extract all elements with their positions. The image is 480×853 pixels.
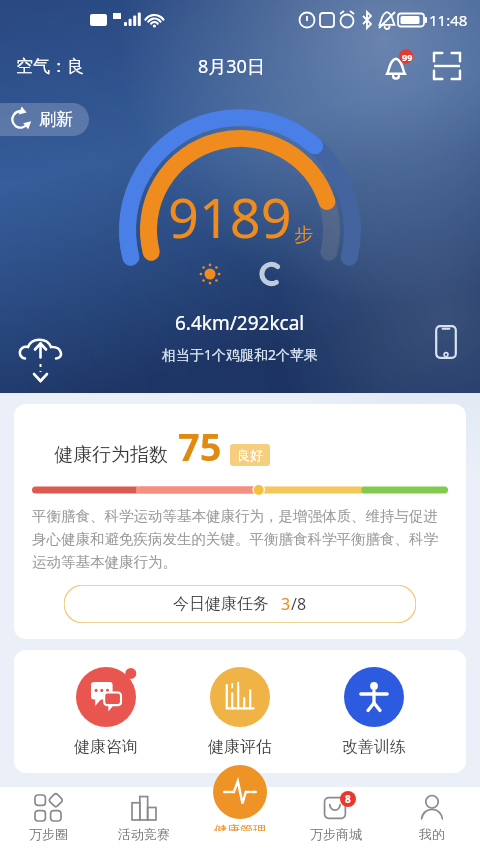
button[interactable]: 改善训练 — [332, 666, 416, 757]
button[interactable]: 空气：良 — [14, 52, 86, 81]
button[interactable]: 活动竞赛 — [96, 793, 192, 853]
button[interactable]: Sync — [16, 335, 66, 385]
button[interactable]: 健康咨询 — [64, 666, 148, 757]
button[interactable]: 今日健康任务 — [64, 585, 416, 623]
button[interactable]: Scan — [428, 47, 466, 85]
button[interactable]: 8 — [288, 793, 384, 853]
staticText: 75 — [178, 420, 222, 472]
staticText: 相当于1个鸡腿和2个苹果 — [162, 345, 319, 364]
staticText: 刷新 — [39, 109, 73, 130]
staticText: 健康评估 — [208, 737, 272, 757]
staticText: 健康行为指数 — [54, 443, 168, 467]
staticText: 健康咨询 — [74, 737, 138, 757]
button[interactable]: 健康管理 — [213, 765, 267, 819]
staticText: 健康管理 — [214, 822, 266, 831]
staticText: 今日健康任务 — [173, 594, 269, 614]
staticText: 8 — [345, 792, 351, 806]
button[interactable]: Day steps — [198, 262, 222, 286]
button[interactable]: 健康行为指数 — [14, 404, 466, 639]
staticText: 6.4km/292kcal — [175, 310, 305, 336]
button[interactable]: 刷新 — [0, 103, 89, 136]
staticText: 改善训练 — [342, 737, 406, 757]
staticText: 步 — [294, 223, 313, 247]
button[interactable]: 万步圈 — [0, 793, 96, 853]
staticText: /8 — [291, 593, 307, 615]
staticText: 活动竞赛 — [118, 826, 170, 842]
staticText: 良好 — [237, 447, 263, 463]
staticText: 我的 — [419, 826, 445, 842]
staticText: 8月30日 — [198, 54, 265, 79]
button[interactable]: Notifications — [378, 46, 418, 86]
staticText: 万步圈 — [29, 826, 68, 842]
staticText: 99 — [402, 51, 413, 63]
staticText: 3 — [281, 593, 291, 615]
button[interactable]: Device — [434, 324, 458, 360]
button[interactable]: Night steps — [258, 262, 282, 286]
staticText: 9189 — [168, 180, 292, 254]
button[interactable]: 健康评估 — [198, 666, 282, 757]
staticText: 11:48 — [429, 10, 468, 30]
button[interactable]: 我的 — [384, 793, 480, 853]
staticText: 平衡膳食、科学运动等基本健康行为，是增强体质、维持与促进身心健康和避免疾病发生的… — [32, 507, 448, 571]
staticText: 空气：良 — [16, 56, 84, 77]
staticText: 万步商城 — [310, 826, 362, 842]
